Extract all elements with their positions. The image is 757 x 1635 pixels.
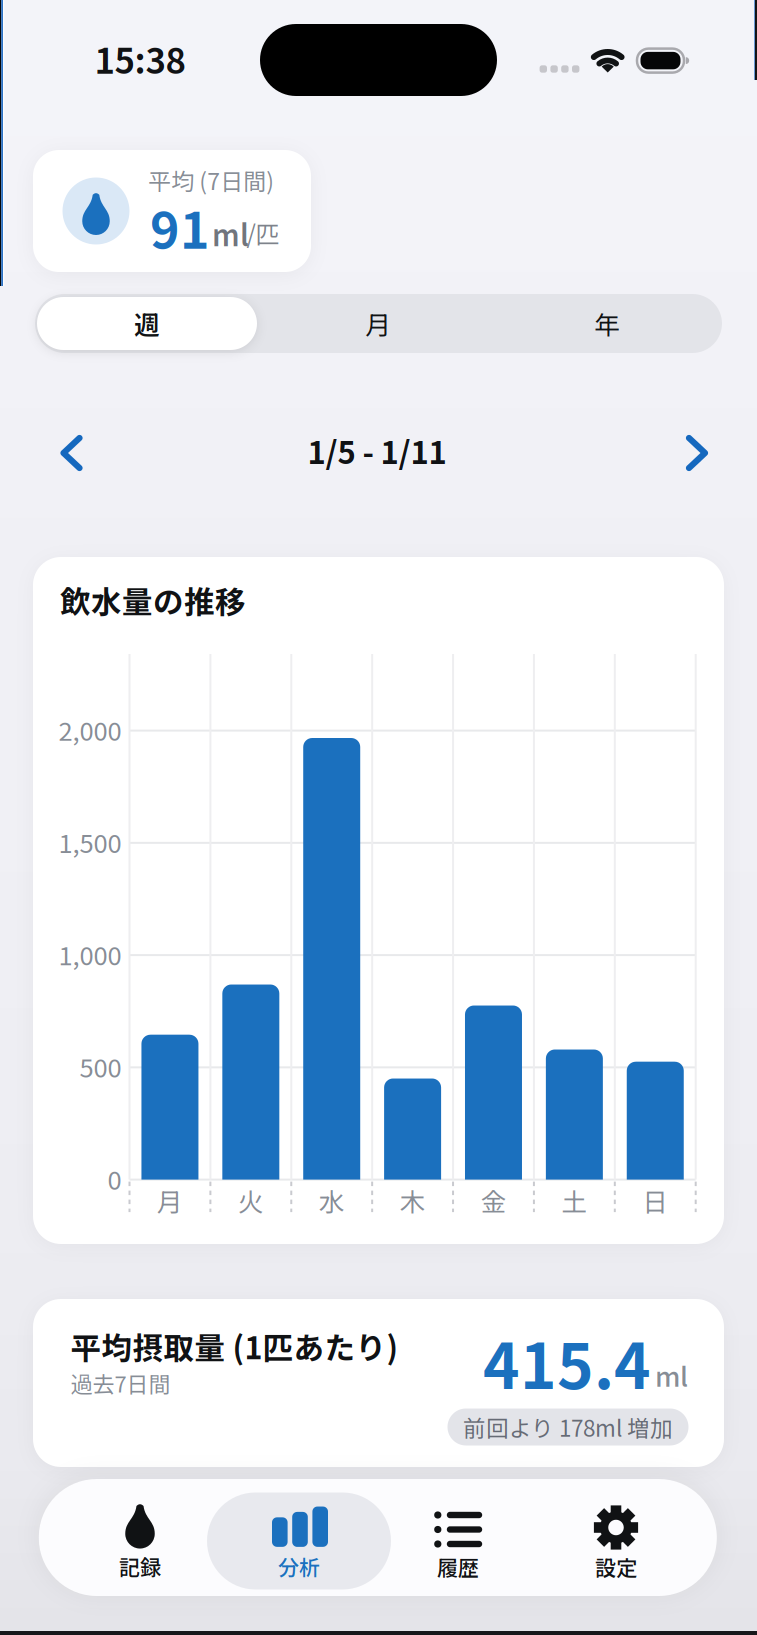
button[interactable]: 月 [264,294,493,353]
staticText: 履歴 [437,1551,479,1582]
staticText: 1,500 [58,823,121,860]
staticText: 過去7日間 [71,1367,171,1399]
staticText: 設定 [595,1551,637,1582]
staticText: 年 [594,305,620,342]
button[interactable]: 分析 [219,1479,378,1596]
button[interactable]: 週 [35,294,264,353]
button[interactable]: 履歴 [378,1479,537,1596]
staticText: /匹 [246,216,279,250]
staticText: 平均摂取量 (1匹あたり) [71,1324,399,1368]
staticText: 1,000 [58,936,121,972]
staticText: 記録 [119,1551,161,1581]
staticText: 2,000 [58,711,121,748]
staticText: 火 [238,1182,264,1219]
button[interactable]: 設定 [536,1479,695,1596]
staticText: 木 [400,1182,426,1219]
staticText: 1/5 - 1/11 [307,428,446,473]
staticText: 0 [107,1160,121,1197]
staticText: 前回より 178ml 増加 [463,1411,673,1443]
staticText: 土 [561,1182,587,1219]
button[interactable]: 前の週 [49,426,93,480]
staticText: 日 [642,1182,668,1219]
staticText: 500 [79,1048,121,1085]
staticText: 分析 [278,1551,320,1581]
staticText: 水 [319,1182,345,1219]
button[interactable]: 次の週 [675,426,719,480]
staticText: 月 [157,1182,183,1219]
staticText: 飲水量の推移 [60,578,246,622]
staticText: 415.4 [483,1317,651,1407]
button[interactable]: 年 [493,294,722,353]
staticText: 週 [134,305,160,342]
staticText: 金 [480,1182,506,1219]
staticText: ml [655,1355,688,1395]
button[interactable]: 記録 [60,1479,219,1596]
staticText: 平均 (7日間) [148,163,274,196]
staticText: 15:38 [94,33,185,84]
staticText: 91 [150,191,210,263]
staticText: 月 [365,305,391,342]
staticText: ml [212,212,249,254]
